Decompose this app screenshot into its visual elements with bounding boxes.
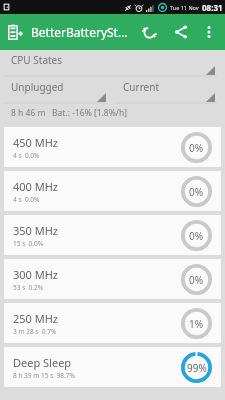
staticText: 0%: [189, 141, 204, 155]
button[interactable]: 400 MHz: [4, 171, 221, 211]
staticText: Current: [123, 80, 159, 94]
staticText: 450 MHz: [13, 135, 59, 150]
staticText: 0%: [189, 185, 204, 199]
button[interactable]: Deep Sleep: [4, 347, 221, 387]
button[interactable]: App icon: [5, 21, 27, 43]
button[interactable]: 300 MHz: [4, 259, 221, 299]
button[interactable]: 250 MHz: [4, 303, 221, 343]
staticText: CPU States: [11, 53, 63, 67]
staticText: 250 MHz: [13, 311, 59, 326]
staticText: 99%: [187, 361, 207, 375]
staticText: 3 m 28 s 0.7%: [13, 327, 57, 336]
button[interactable]: 350 MHz: [4, 215, 221, 255]
staticText: BetterBatterySt...: [31, 24, 128, 40]
staticText: 08:31: [202, 2, 223, 13]
button[interactable]: Share: [168, 19, 194, 45]
staticText: 4 s 0.0%: [13, 151, 40, 160]
button[interactable]: 450 MHz: [4, 127, 221, 167]
staticText: 8 h 46 m Bat.: -16% [1.8%/h]: [11, 107, 127, 119]
staticText: 300 MHz: [13, 267, 59, 282]
staticText: 4 s 0.0%: [13, 195, 40, 204]
staticText: 1%: [189, 317, 204, 331]
staticText: 53 s 0.2%: [13, 283, 44, 292]
staticText: 0%: [189, 273, 204, 287]
button[interactable]: More options: [198, 21, 220, 43]
staticText: 350 MHz: [13, 223, 59, 238]
button[interactable]: Current: [112, 77, 221, 104]
staticText: Deep Sleep: [13, 355, 72, 370]
staticText: 15 s 0.0%: [13, 239, 44, 248]
button[interactable]: Unplugged: [0, 77, 112, 104]
staticText: Tue 11 Nov: [170, 4, 199, 11]
button[interactable]: Refresh: [136, 19, 162, 45]
staticText: 8 h 39 m 15 s 98.7%: [13, 371, 75, 380]
staticText: Unplugged: [11, 80, 64, 94]
staticText: 0%: [189, 229, 204, 243]
staticText: 400 MHz: [13, 179, 59, 194]
button[interactable]: CPU States: [0, 50, 221, 77]
